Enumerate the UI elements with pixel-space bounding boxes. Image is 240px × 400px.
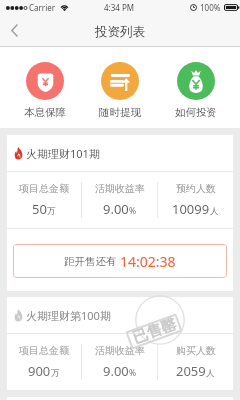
button[interactable]: 距开售还有 xyxy=(13,244,227,278)
button[interactable]: 火期理财101期 xyxy=(7,135,233,291)
staticText: 购买人数 xyxy=(176,344,216,357)
staticText: 项目总金额 xyxy=(19,344,69,357)
staticText: 本息保障 xyxy=(24,106,66,119)
staticText: 2059 xyxy=(176,362,206,380)
staticText: 14:02:38 xyxy=(120,252,176,271)
staticText: 距开售还有 xyxy=(64,255,117,268)
staticText: 9.00 xyxy=(103,362,129,380)
staticText: % xyxy=(129,367,137,379)
staticText: 活期收益率 xyxy=(95,344,145,357)
staticText: 9.00 xyxy=(103,200,129,218)
staticText: 如何投资 xyxy=(175,106,217,119)
staticText: 万 xyxy=(51,368,60,379)
staticText: 900 xyxy=(28,362,51,380)
staticText: 10099 xyxy=(172,200,210,218)
staticText: 火期理财第100期 xyxy=(26,308,111,323)
staticText: 已售罄 xyxy=(130,315,179,348)
staticText: 万 xyxy=(47,206,56,217)
staticText: 50 xyxy=(32,200,47,218)
button[interactable]: 本息保障 xyxy=(14,62,76,119)
staticText: Carrier xyxy=(29,2,56,13)
staticText: 100% xyxy=(200,2,221,13)
staticText: 活期收益率 xyxy=(95,182,145,195)
staticText: % xyxy=(129,205,137,217)
staticText: 预约人数 xyxy=(176,182,216,195)
button[interactable]: 随时提现 xyxy=(89,62,151,119)
button[interactable]: 如何投资 xyxy=(165,62,227,119)
staticText: 人 xyxy=(210,206,219,217)
staticText: 项目总金额 xyxy=(19,182,69,195)
staticText: 人 xyxy=(206,368,215,379)
staticText: 火期理财101期 xyxy=(26,146,100,161)
staticText: 4:34 PM xyxy=(104,2,135,13)
staticText: 随时提现 xyxy=(99,106,141,119)
button[interactable]: Back xyxy=(0,15,30,47)
staticText: 投资列表 xyxy=(95,24,145,40)
button[interactable]: 火期理财第100期 xyxy=(7,297,233,390)
